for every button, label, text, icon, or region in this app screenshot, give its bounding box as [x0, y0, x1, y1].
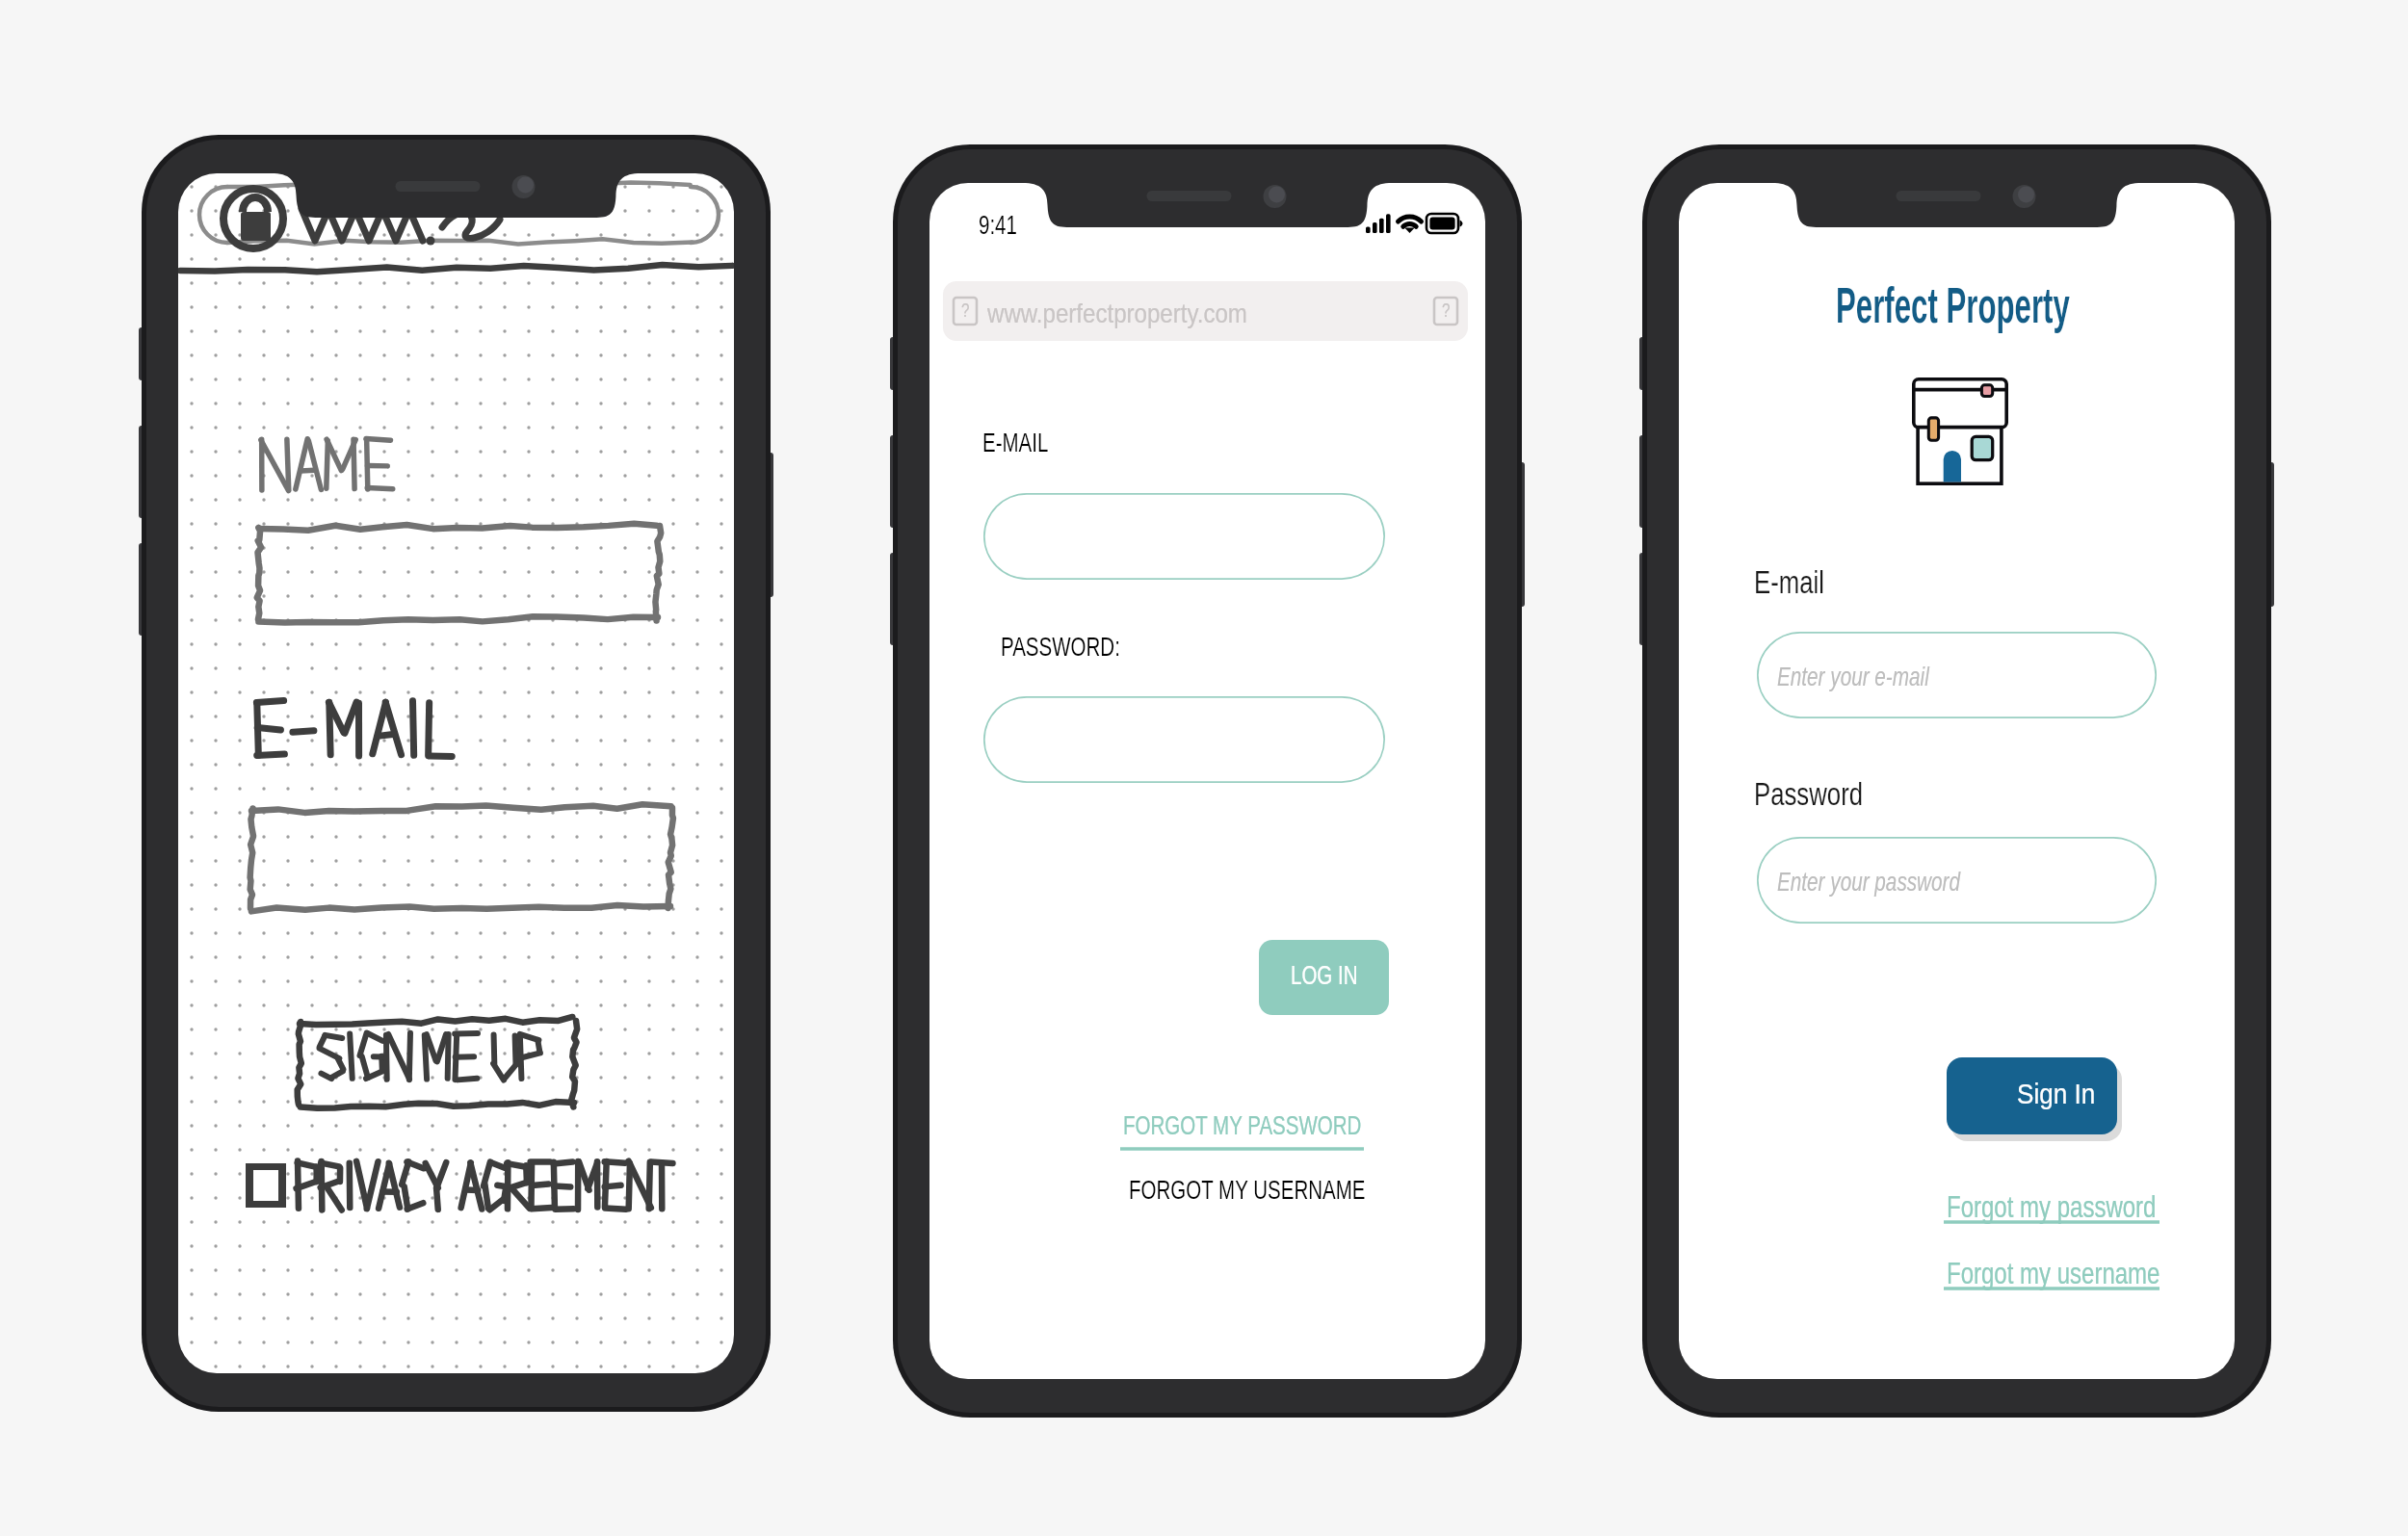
staticText: Perfect Property [1836, 277, 2070, 333]
staticText: FORGOT MY PASSWORD [1123, 1111, 1362, 1140]
button[interactable] [983, 696, 1385, 783]
staticText: PASSWORD: [1001, 633, 1121, 662]
button[interactable]: Enter your password [1757, 837, 2157, 924]
staticText: E-MAIL [982, 429, 1049, 457]
staticText: FORGOT MY USERNAME [1129, 1176, 1366, 1205]
button[interactable]: FORGOT MY PASSWORD [1120, 1108, 1371, 1155]
staticText: Enter your password [1777, 867, 1960, 897]
staticText: ? [961, 299, 970, 321]
button[interactable]: FORGOT MY USERNAME [1126, 1172, 1376, 1209]
staticText: www.perfectproperty.com [987, 299, 1247, 328]
button[interactable]: Enter your e-mail [1757, 632, 2157, 718]
staticText: Enter your e-mail [1777, 662, 1930, 691]
button[interactable]: Forgot my password [1944, 1187, 2163, 1228]
staticText: E-mail [1754, 564, 1825, 600]
button[interactable]: ? [943, 281, 1468, 341]
button[interactable]: Forgot my username [1944, 1254, 2163, 1294]
staticText: Forgot my username [1947, 1256, 2160, 1290]
staticText: Forgot my password [1947, 1189, 2156, 1224]
button[interactable]: LOG IN [1259, 940, 1389, 1015]
staticText: Sign In [2017, 1078, 2096, 1110]
staticText: LOG IN [1291, 961, 1358, 990]
button[interactable]: Sign In [1947, 1057, 2117, 1134]
staticText: 9:41 [979, 211, 1017, 240]
staticText: Password [1754, 776, 1863, 812]
other: Perfect Property logo [1912, 377, 2008, 485]
staticText: ? [1442, 299, 1451, 321]
button[interactable] [983, 493, 1385, 580]
